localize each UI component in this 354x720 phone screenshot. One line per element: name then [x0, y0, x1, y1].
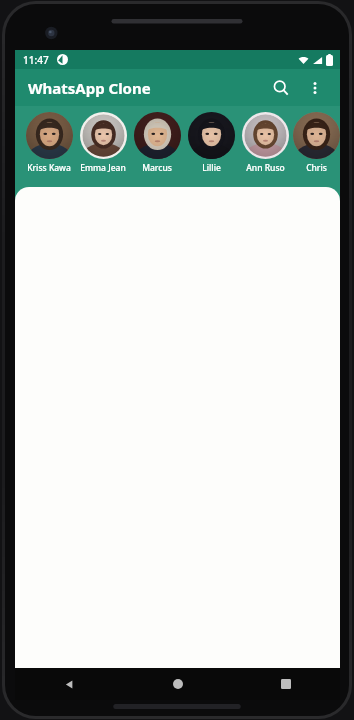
staticText: Chris — [306, 162, 327, 174]
button[interactable]: Recent apps — [232, 668, 340, 700]
button[interactable]: Home — [124, 668, 232, 700]
staticText: Ann Ruso — [246, 162, 285, 174]
button[interactable]: Lillie — [184, 110, 238, 174]
staticText: Marcus — [142, 162, 172, 174]
button[interactable]: More options — [298, 71, 332, 105]
staticText: Emma Jean — [80, 162, 126, 174]
button[interactable]: Search — [264, 71, 298, 105]
button[interactable]: Ann Ruso — [238, 110, 292, 174]
button[interactable]: Marcus — [130, 110, 184, 174]
button[interactable]: Chris — [292, 110, 340, 174]
staticText: Lillie — [202, 162, 221, 174]
button[interactable]: Back — [15, 668, 124, 700]
staticText: Kriss Kawa — [27, 162, 71, 174]
button[interactable]: Kriss Kawa — [22, 110, 76, 174]
button[interactable]: Emma Jean — [76, 110, 130, 174]
staticText: 11:47 — [23, 53, 49, 67]
staticText: WhatsApp Clone — [28, 78, 151, 98]
